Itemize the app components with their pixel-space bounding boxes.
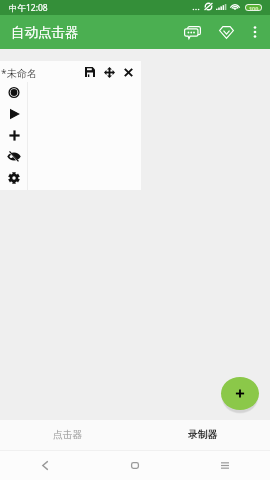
staticText: 录制器: [188, 429, 218, 441]
staticText: 100: [249, 5, 259, 10]
button[interactable]: Back: [0, 451, 90, 480]
button[interactable]: Hide: [3, 145, 25, 167]
button[interactable]: Play: [3, 103, 25, 125]
button[interactable]: Settings: [3, 167, 25, 189]
button[interactable]: Premium: [212, 15, 240, 49]
staticText: *未命名: [1, 66, 38, 80]
button[interactable]: Move: [101, 64, 117, 80]
staticText: 中午12:08: [9, 2, 48, 14]
button[interactable]: 点击器: [0, 420, 135, 450]
staticText: 自动点击器: [11, 24, 79, 41]
button[interactable]: Close: [120, 64, 136, 80]
button[interactable]: Save: [82, 64, 98, 80]
button[interactable]: More options: [243, 15, 267, 49]
button[interactable]: Home: [90, 451, 180, 480]
button[interactable]: 录制器: [135, 420, 270, 450]
button[interactable]: Recents: [180, 451, 270, 480]
staticText: 点击器: [53, 429, 83, 441]
button[interactable]: Add: [221, 377, 259, 414]
button[interactable]: Feedback: [178, 15, 206, 49]
button[interactable]: Record: [3, 81, 25, 103]
button[interactable]: Add: [3, 124, 25, 146]
